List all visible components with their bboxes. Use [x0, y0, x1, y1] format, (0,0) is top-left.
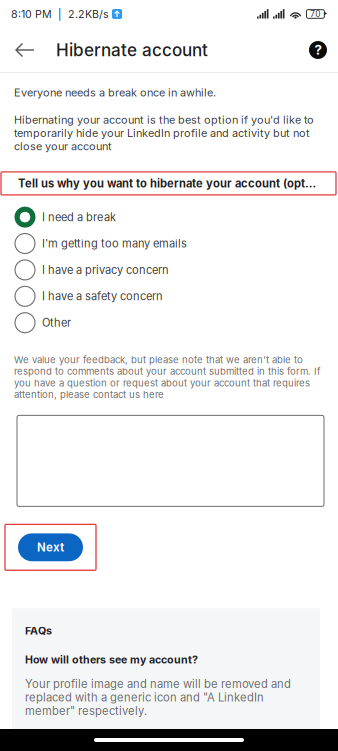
staticText: I need a break	[42, 210, 116, 224]
staticText: Hibernating your account is the best opt…	[14, 113, 314, 153]
button[interactable]: Next	[18, 533, 83, 561]
staticText: FAQs	[25, 624, 52, 637]
staticText: Next	[37, 540, 64, 554]
staticText: Your profile image and name will be remo…	[25, 677, 291, 718]
staticText: How will others see my account?	[25, 653, 198, 666]
staticText: Tell us why you want to hibernate your a…	[18, 177, 318, 190]
staticText: ?	[314, 42, 321, 58]
staticText: Other	[42, 316, 71, 329]
staticText: 8:10 PM | 2.2KB/s	[11, 7, 109, 20]
staticText: We value your feedback, but please note …	[14, 354, 321, 400]
staticText: I'm getting too many emails	[42, 237, 187, 250]
button[interactable]: Back	[3, 28, 47, 72]
button[interactable]: I have a safety concern	[0, 283, 338, 309]
staticText: 70	[310, 9, 320, 19]
staticText: Everyone needs a break once in awhile.	[14, 86, 216, 99]
button[interactable]: Other	[0, 309, 338, 336]
staticText: I have a safety concern	[42, 290, 163, 303]
staticText: I have a privacy concern	[42, 263, 169, 277]
staticText: Hibernate account	[56, 40, 208, 60]
button[interactable]: I need a break	[0, 204, 338, 230]
button[interactable]: I have a privacy concern	[0, 257, 338, 283]
button[interactable]: Help	[299, 28, 337, 72]
button[interactable]: I'm getting too many emails	[0, 230, 338, 257]
